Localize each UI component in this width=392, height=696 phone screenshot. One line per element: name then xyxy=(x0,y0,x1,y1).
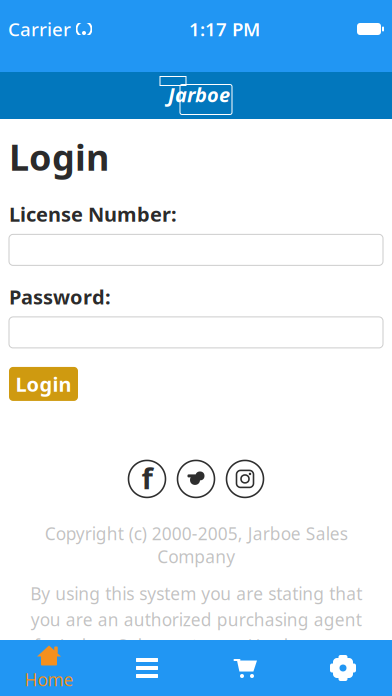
button[interactable]: Login xyxy=(9,367,78,401)
button[interactable]: Twitter xyxy=(177,460,215,498)
button[interactable]: Instagram xyxy=(226,460,264,498)
staticText: Jarboe xyxy=(168,81,230,108)
button[interactable]: Cart xyxy=(196,640,294,696)
staticText: Copyright (c) 2000-2005, Jarboe Sales Co… xyxy=(44,522,347,568)
button[interactable]: Settings xyxy=(294,640,392,696)
staticText: Password: xyxy=(9,283,111,310)
staticText: By using this system you are stating tha… xyxy=(23,582,368,696)
button[interactable]: Facebook xyxy=(128,460,166,498)
staticText: License Number: xyxy=(9,201,177,227)
staticText: Carrier xyxy=(8,17,71,41)
staticText: Login xyxy=(15,371,71,397)
staticText: Home xyxy=(24,668,73,691)
staticText: 1:17 PM xyxy=(189,17,260,41)
button[interactable]: Home xyxy=(0,640,98,696)
staticText: Login xyxy=(9,133,109,181)
staticText: f xyxy=(141,458,152,497)
button[interactable]: Menu xyxy=(98,640,196,696)
